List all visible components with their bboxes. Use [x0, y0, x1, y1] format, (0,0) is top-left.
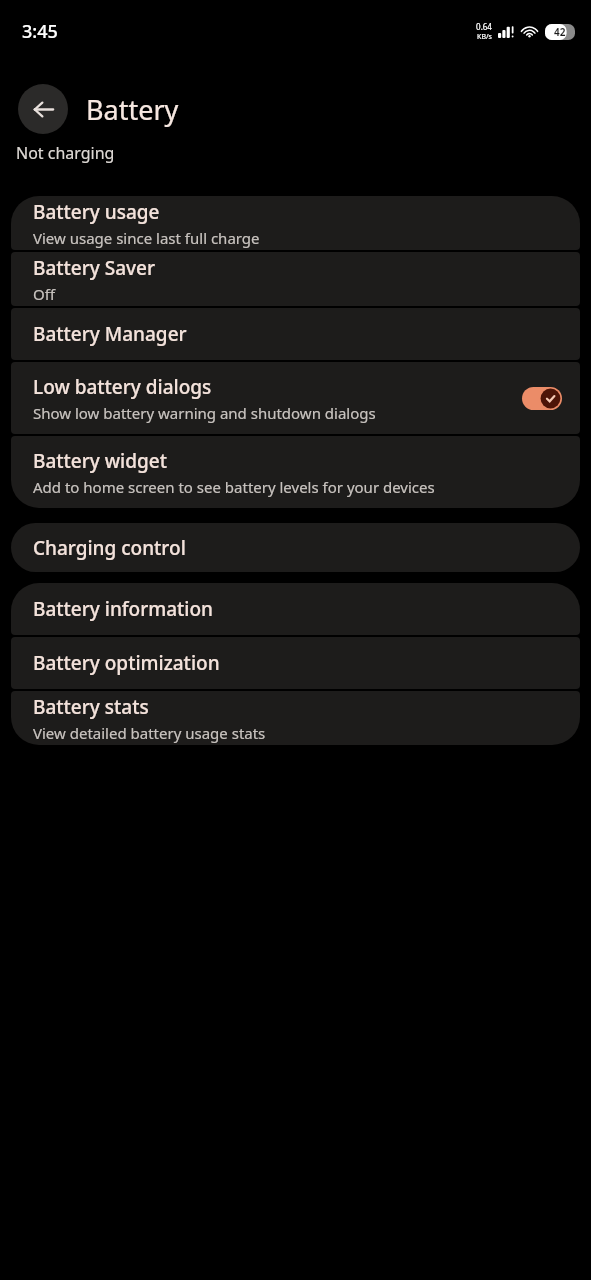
staticText: Charging control [33, 535, 186, 561]
button[interactable]: Battery widget [11, 436, 580, 508]
button[interactable]: Low battery dialogs [11, 362, 580, 434]
staticText: KB/s [477, 32, 492, 42]
button[interactable]: Charging control [11, 523, 580, 572]
staticText: Not charging [16, 142, 115, 164]
button[interactable]: Battery information [11, 583, 580, 635]
staticText: 42 [554, 25, 566, 39]
staticText: Battery usage [33, 199, 160, 225]
staticText: Battery widget [33, 448, 167, 474]
staticText: View detailed battery usage stats [33, 723, 266, 743]
staticText: Show low battery warning and shutdown di… [33, 403, 376, 423]
staticText: Battery Manager [33, 321, 187, 347]
staticText: Battery Saver [33, 255, 156, 281]
button[interactable]: Battery Saver [11, 252, 580, 306]
staticText: 0.64 [476, 21, 492, 32]
staticText: Low battery dialogs [33, 374, 212, 400]
staticText: 3:45 [22, 19, 58, 44]
staticText: Off [33, 284, 56, 304]
button[interactable]: Battery stats [11, 691, 580, 745]
staticText: Battery [86, 91, 179, 128]
staticText: View usage since last full charge [33, 228, 260, 248]
button[interactable]: Low battery dialogs toggle [522, 387, 562, 410]
button[interactable]: Back [18, 84, 68, 134]
staticText: Battery stats [33, 694, 149, 720]
staticText: Add to home screen to see battery levels… [33, 477, 435, 497]
button[interactable]: Battery optimization [11, 637, 580, 689]
button[interactable]: Battery Manager [11, 308, 580, 360]
staticText: Battery optimization [33, 650, 220, 676]
button[interactable]: Battery usage [11, 196, 580, 250]
staticText: Battery information [33, 596, 214, 622]
